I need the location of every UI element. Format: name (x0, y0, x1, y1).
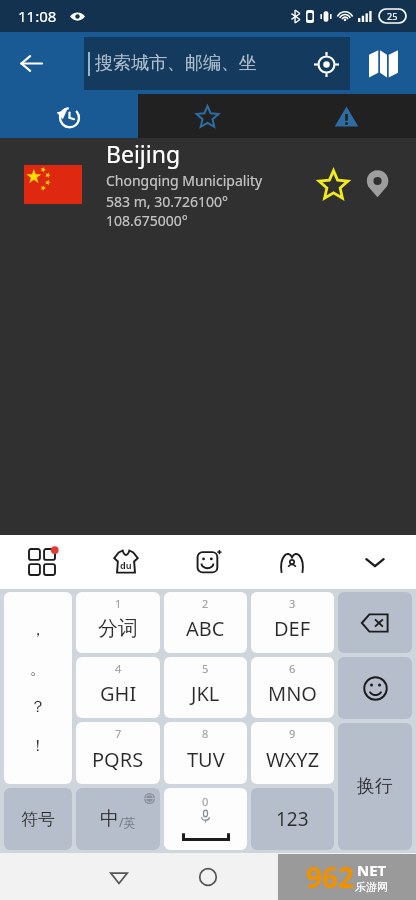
staticText: 8 (202, 726, 209, 741)
button[interactable]: 搜索城市、邮编、坐 (84, 37, 350, 90)
button[interactable]: Home (185, 854, 231, 900)
button[interactable]: 8 (164, 722, 247, 784)
staticText: 分词 (98, 616, 138, 641)
staticText: 符号 (21, 809, 55, 830)
staticText: 6 (289, 661, 296, 676)
button[interactable]: Map (356, 36, 410, 90)
staticText: ？ (30, 697, 46, 717)
staticText: 1 (115, 596, 122, 611)
button[interactable]: Account (250, 535, 333, 589)
button[interactable]: 2 (164, 592, 247, 653)
button[interactable]: Backspace (338, 592, 412, 653)
button[interactable]: 0 (164, 788, 247, 850)
staticText: 9 (289, 726, 296, 741)
staticText: Chongqing Municipality (106, 171, 263, 190)
button[interactable]: 换行 (338, 723, 412, 850)
button[interactable]: Back (96, 854, 142, 900)
button[interactable]: 123 (251, 788, 334, 850)
staticText: Beijing (106, 138, 181, 169)
button[interactable]: Hide keyboard (333, 535, 416, 589)
button[interactable]: 5 (164, 657, 247, 718)
button[interactable]: Emoji (338, 657, 412, 719)
staticText: TUV (187, 746, 225, 773)
button[interactable]: My location (302, 40, 350, 88)
staticText: NET (357, 860, 387, 880)
staticText: ！ (30, 736, 46, 756)
button[interactable]: Show on map (356, 163, 398, 205)
button[interactable]: Favorites (138, 94, 277, 138)
staticText: 0 (202, 794, 209, 809)
staticText: 中 (100, 807, 119, 831)
staticText: ， (30, 620, 46, 640)
staticText: GHI (100, 680, 137, 707)
button[interactable]: Skins (84, 535, 167, 589)
staticText: ABC (186, 615, 225, 642)
staticText: 搜索城市、邮编、坐 (95, 52, 302, 75)
staticText: PQRS (92, 746, 144, 773)
button[interactable]: Favorite (310, 161, 356, 207)
button[interactable]: ， (4, 592, 72, 784)
staticText: 25 (387, 10, 398, 22)
button[interactable]: History (0, 94, 138, 138)
staticText: JKL (191, 680, 220, 707)
button[interactable]: 4 (76, 657, 160, 718)
staticText: 7 (115, 726, 122, 741)
button[interactable]: Apps (0, 535, 84, 589)
button[interactable]: 1 (76, 592, 160, 653)
staticText: 962 (306, 858, 355, 896)
staticText: 换行 (357, 775, 393, 798)
button[interactable]: Back (6, 38, 56, 88)
button[interactable]: 3 (251, 592, 334, 653)
button[interactable]: 符号 (4, 788, 72, 850)
staticText: WXYZ (266, 746, 320, 773)
staticText: 乐游网 (355, 880, 388, 894)
staticText: MNO (268, 680, 317, 707)
button[interactable]: Alerts (277, 94, 416, 138)
button[interactable]: 6 (251, 657, 334, 718)
staticText: /英 (119, 814, 136, 830)
staticText: 123 (276, 806, 309, 832)
staticText: 11:08 (18, 6, 57, 26)
staticText: 。 (30, 659, 46, 679)
staticText: du (120, 559, 132, 571)
button[interactable]: Beijing (0, 138, 416, 230)
staticText: 3 (289, 596, 296, 611)
button[interactable]: 9 (251, 722, 334, 784)
button[interactable]: Stickers (167, 535, 250, 589)
staticText: 4 (115, 661, 122, 676)
staticText: 583 m, 30.726100° 108.675000° (106, 192, 310, 230)
staticText: 2 (202, 596, 209, 611)
button[interactable]: 7 (76, 722, 160, 784)
staticText: DEF (274, 615, 311, 642)
staticText: 5 (202, 661, 209, 676)
button[interactable]: 中 (76, 788, 160, 850)
